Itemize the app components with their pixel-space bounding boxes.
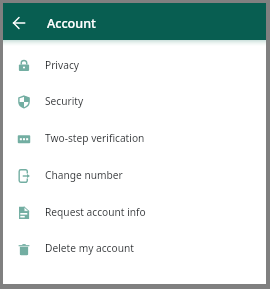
staticText: Delete my account <box>45 241 134 255</box>
button[interactable]: Back <box>3 3 36 40</box>
staticText: Privacy <box>45 58 79 72</box>
button[interactable]: Change number <box>3 156 266 193</box>
staticText: Request account info <box>45 205 146 219</box>
staticText: Security <box>45 94 84 108</box>
button[interactable]: Request account info <box>3 193 266 230</box>
staticText: Two-step verification <box>45 131 145 145</box>
button[interactable]: Two-step verification <box>3 119 266 156</box>
staticText: Change number <box>45 168 123 182</box>
button[interactable]: Delete my account <box>3 229 266 266</box>
staticText: Account <box>47 15 96 32</box>
button[interactable]: Security <box>3 82 266 119</box>
button[interactable]: Privacy <box>3 46 266 83</box>
